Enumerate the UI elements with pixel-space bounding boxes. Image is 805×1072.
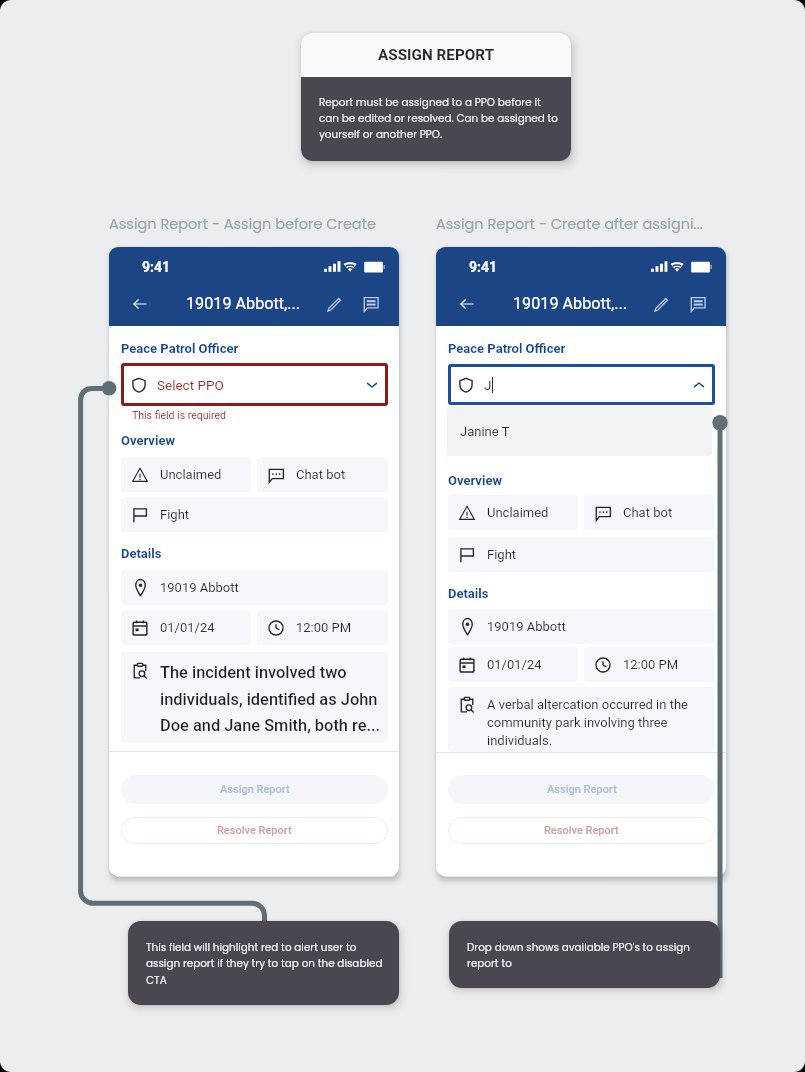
staticText: Select PPO bbox=[157, 377, 224, 393]
staticText: Unclaimed bbox=[487, 505, 549, 520]
button[interactable]: Messages bbox=[359, 292, 383, 316]
button[interactable]: Edit bbox=[649, 292, 673, 316]
staticText: 12:00 PM bbox=[623, 657, 679, 672]
button[interactable]: A verbal altercation occurred in the com… bbox=[448, 687, 715, 752]
staticText: 9:41 bbox=[469, 259, 498, 275]
button[interactable]: Edit bbox=[322, 292, 346, 316]
staticText: Overview bbox=[448, 473, 502, 488]
button[interactable]: Resolve Report bbox=[448, 817, 715, 844]
staticText: Assign Report - Create after assigni... bbox=[436, 214, 703, 234]
button[interactable]: 19019 Abbott bbox=[448, 609, 715, 644]
staticText: Resolve Report bbox=[544, 824, 619, 837]
button[interactable]: Unclaimed bbox=[448, 495, 578, 530]
button[interactable]: Assign Report bbox=[448, 775, 715, 804]
button[interactable]: Janine T bbox=[447, 406, 712, 456]
staticText: Chat bot bbox=[623, 505, 673, 520]
staticText: 19019 Abbott,... bbox=[186, 294, 301, 313]
staticText: Peace Patrol Officer bbox=[448, 341, 566, 356]
button[interactable]: Fight bbox=[121, 497, 388, 532]
button[interactable]: Chat bot bbox=[584, 495, 715, 530]
staticText: 19019 Abbott bbox=[487, 619, 566, 634]
button[interactable]: Fight bbox=[448, 537, 715, 572]
button[interactable]: Back bbox=[454, 291, 480, 317]
staticText: This field will highlight red to alert u… bbox=[146, 940, 388, 988]
staticText: 19019 Abbott bbox=[160, 580, 239, 595]
button[interactable]: Resolve Report bbox=[121, 817, 388, 844]
staticText: 01/01/24 bbox=[160, 620, 215, 635]
staticText: Details bbox=[121, 546, 162, 561]
staticText: 9:41 bbox=[142, 259, 171, 275]
staticText: Details bbox=[448, 586, 489, 601]
button[interactable]: 19019 Abbott bbox=[121, 570, 388, 605]
button[interactable]: Messages bbox=[686, 292, 710, 316]
staticText: Chat bot bbox=[296, 467, 346, 482]
staticText: Janine T bbox=[460, 424, 510, 439]
staticText: Peace Patrol Officer bbox=[121, 341, 239, 356]
staticText: Drop down shows available PPO's to assig… bbox=[467, 940, 709, 971]
staticText: Unclaimed bbox=[160, 467, 222, 482]
button[interactable]: 12:00 PM bbox=[584, 647, 715, 682]
staticText: This field is required bbox=[132, 409, 226, 421]
button[interactable]: Unclaimed bbox=[121, 457, 251, 492]
button[interactable]: The incident involved two individuals, i… bbox=[121, 652, 388, 743]
button[interactable]: 12:00 PM bbox=[257, 610, 388, 645]
staticText: The incident involved two individuals, i… bbox=[160, 663, 385, 735]
button[interactable]: Chat bot bbox=[257, 457, 388, 492]
staticText: 01/01/24 bbox=[487, 657, 542, 672]
button[interactable]: Back bbox=[127, 291, 153, 317]
staticText: Fight bbox=[160, 507, 190, 522]
staticText: J bbox=[484, 377, 492, 393]
staticText: Fight bbox=[487, 547, 517, 562]
button[interactable]: 01/01/24 bbox=[121, 610, 251, 645]
button[interactable]: Select PPO bbox=[121, 363, 388, 406]
staticText: 19019 Abbott,... bbox=[513, 294, 628, 313]
button[interactable]: Assign Report bbox=[121, 775, 388, 804]
staticText: A verbal altercation occurred in the com… bbox=[487, 697, 712, 748]
button[interactable]: 01/01/24 bbox=[448, 647, 578, 682]
staticText: 12:00 PM bbox=[296, 620, 352, 635]
staticText: Overview bbox=[121, 433, 175, 448]
staticText: Assign Report bbox=[547, 783, 617, 796]
staticText: Assign Report - Assign before Create bbox=[109, 214, 376, 234]
button[interactable]: J bbox=[448, 364, 715, 405]
staticText: Resolve Report bbox=[217, 824, 292, 837]
staticText: Assign Report bbox=[220, 783, 290, 796]
staticText: ASSIGN REPORT bbox=[378, 46, 495, 64]
staticText: Report must be assigned to a PPO before … bbox=[319, 95, 561, 142]
